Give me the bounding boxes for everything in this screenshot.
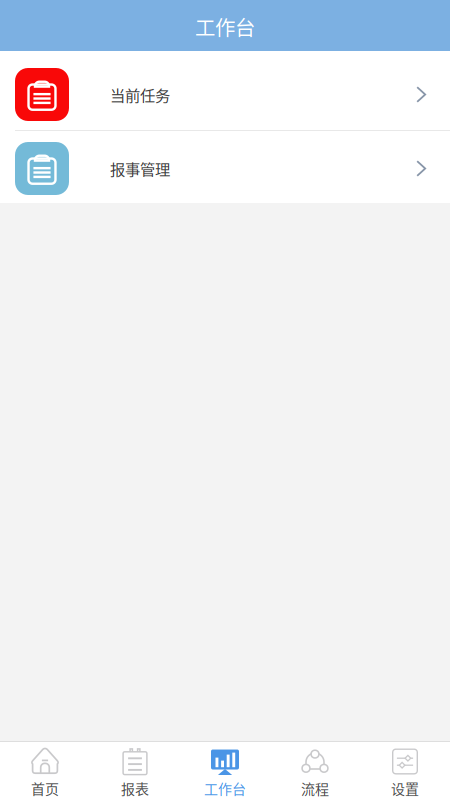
staticText: 设置 bbox=[391, 778, 419, 798]
staticText: 首页 bbox=[31, 778, 59, 798]
button[interactable]: 当前任务 bbox=[0, 51, 450, 130]
staticText: 工作台 bbox=[195, 12, 255, 41]
button[interactable]: 首页 bbox=[0, 742, 90, 800]
staticText: 报表 bbox=[121, 778, 149, 798]
button[interactable]: 报事管理 bbox=[0, 131, 450, 203]
button[interactable]: 设置 bbox=[360, 742, 450, 800]
staticText: 当前任务 bbox=[110, 83, 170, 106]
button[interactable]: 工作台 bbox=[180, 742, 270, 800]
staticText: 流程 bbox=[301, 778, 329, 798]
button[interactable]: 流程 bbox=[270, 742, 360, 800]
button[interactable]: 报表 bbox=[90, 742, 180, 800]
staticText: 报事管理 bbox=[110, 157, 170, 180]
staticText: 工作台 bbox=[204, 778, 246, 798]
